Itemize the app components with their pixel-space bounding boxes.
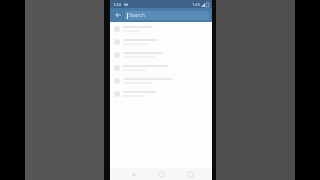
- button[interactable]: [110, 35, 212, 48]
- button[interactable]: [110, 22, 212, 35]
- staticText: 1:45: [192, 2, 200, 7]
- staticText: Search: [129, 12, 145, 19]
- staticText: 1:34: [113, 2, 121, 7]
- button[interactable]: [110, 61, 212, 74]
- button[interactable]: Home: [155, 168, 167, 180]
- button[interactable]: Back: [127, 168, 139, 180]
- button[interactable]: [110, 48, 212, 61]
- button[interactable]: Back: [113, 10, 123, 20]
- button[interactable]: Search: [125, 11, 209, 20]
- button[interactable]: [110, 87, 212, 100]
- button[interactable]: [110, 74, 212, 87]
- button[interactable]: Recent apps: [184, 168, 196, 180]
